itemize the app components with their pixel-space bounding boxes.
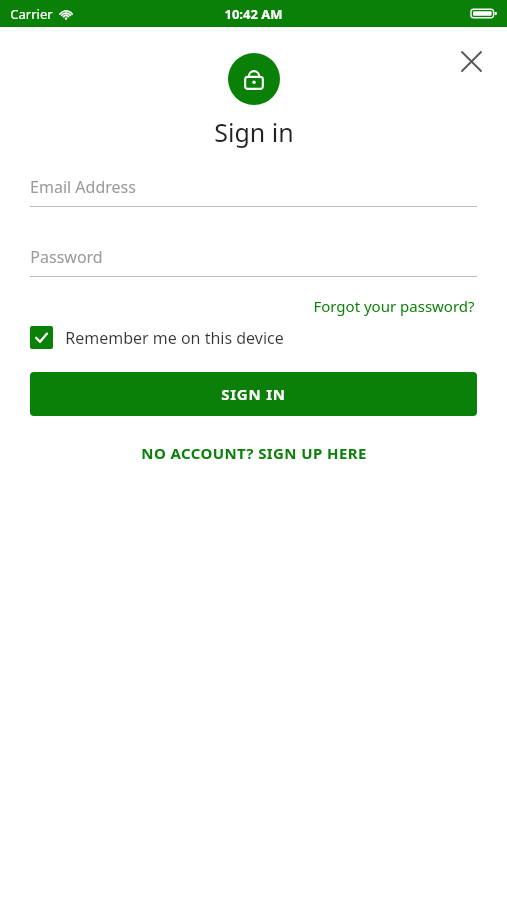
button[interactable]: Password [30,243,477,277]
button[interactable]: SIGN IN [30,372,477,416]
staticText: SIGN IN [221,384,286,404]
staticText: Forgot your password? [313,296,475,316]
button[interactable]: Email Address [30,173,477,207]
staticText: Carrier [10,5,53,23]
button[interactable]: NO ACCOUNT? SIGN UP HERE [135,439,373,467]
staticText: NO ACCOUNT? SIGN UP HERE [141,443,367,463]
staticText: Password [30,246,103,268]
staticText: Sign in [214,115,294,149]
staticText: 10:42 AM [224,5,283,23]
button[interactable]: Remember me on this device [30,326,477,349]
button[interactable]: Close [449,39,493,83]
staticText: Email Address [30,176,136,198]
staticText: Remember me on this device [65,327,284,349]
button[interactable]: Forgot your password? [311,294,477,318]
